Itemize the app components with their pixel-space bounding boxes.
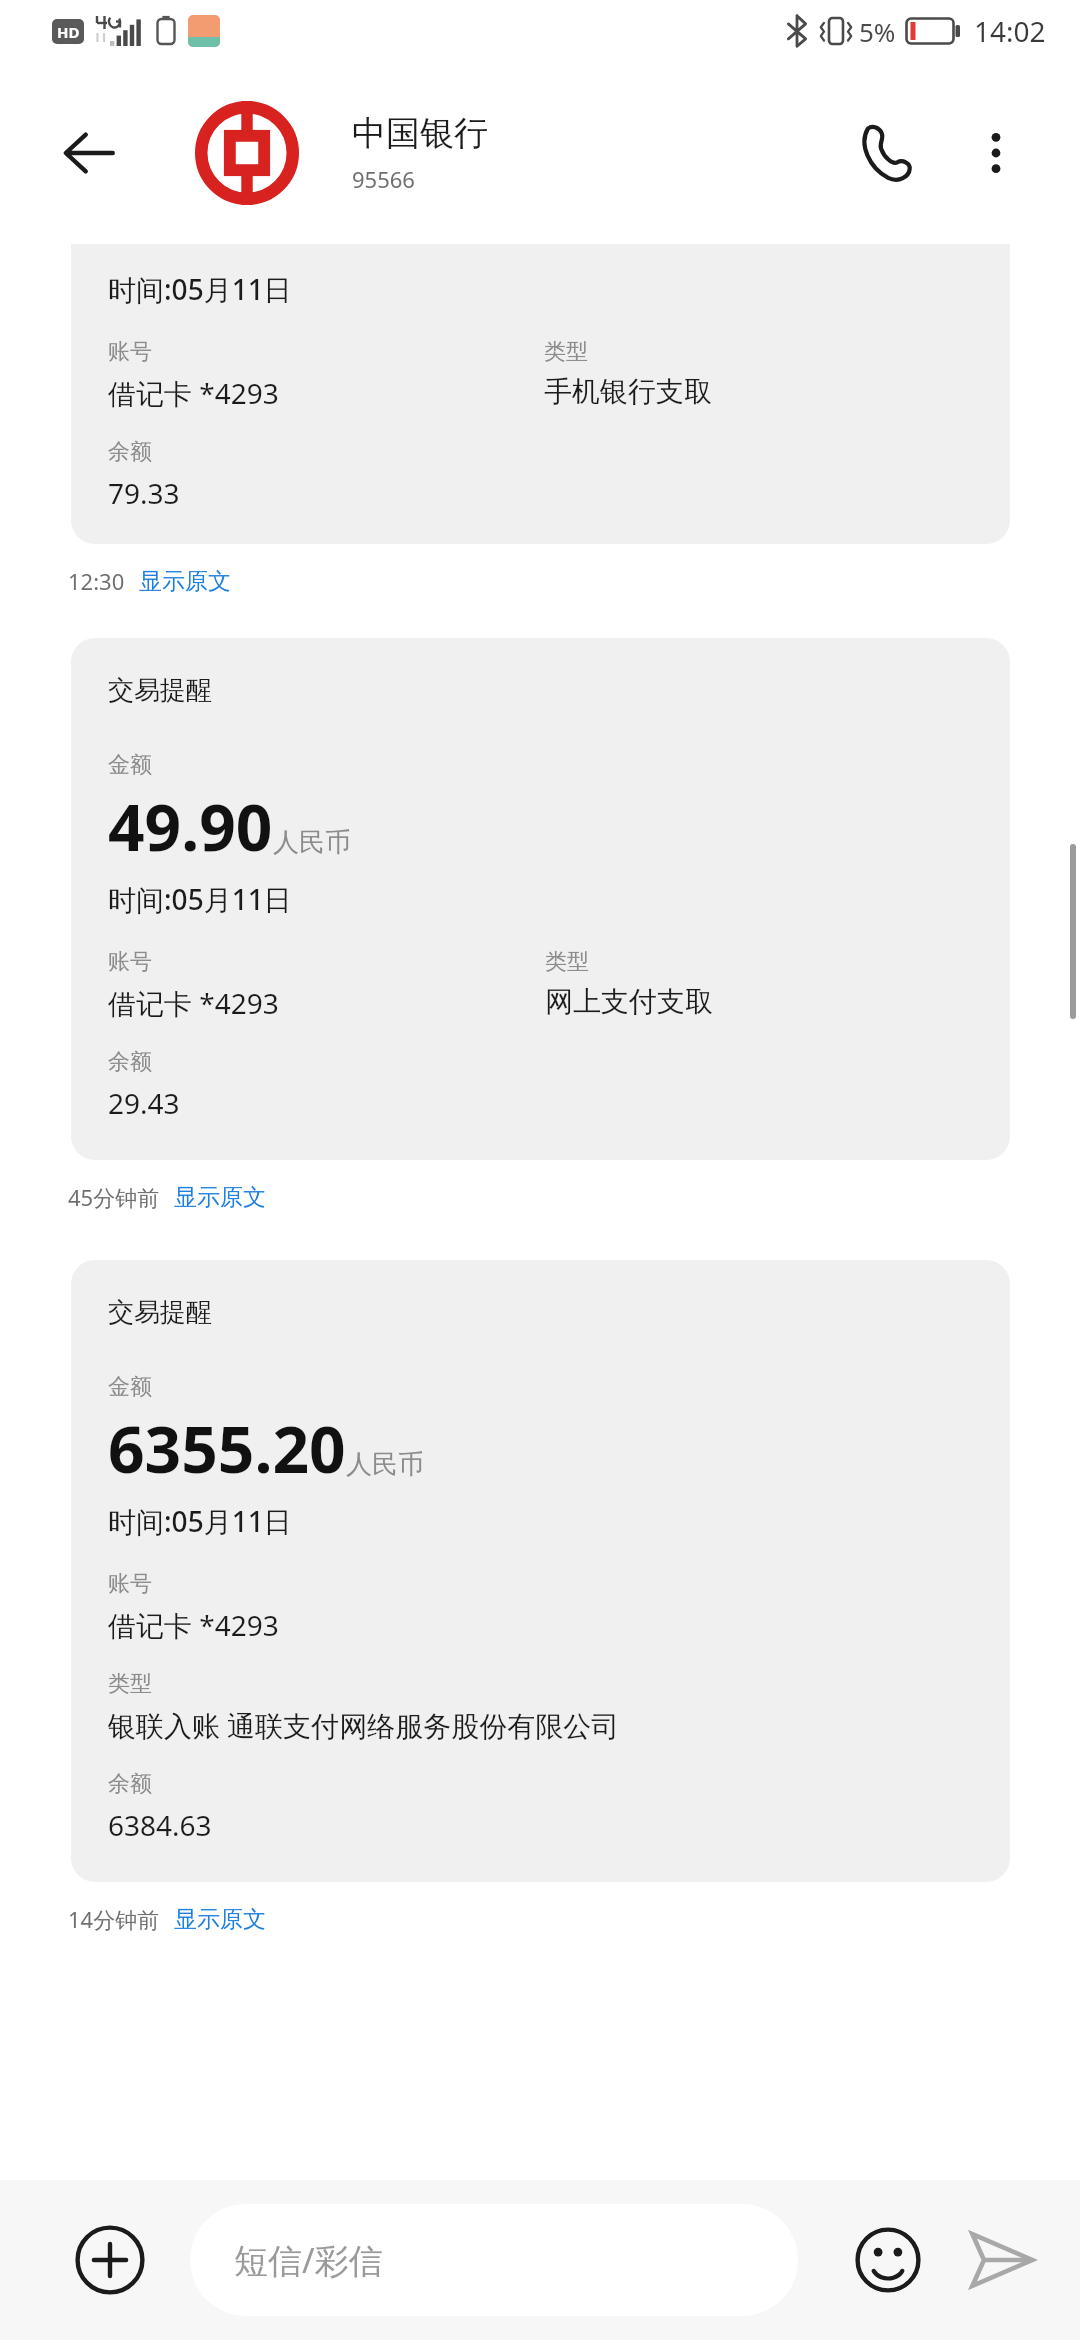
staticText: 交易提醒 [108, 1296, 212, 1329]
staticText: 时间:05月11日 [108, 1502, 292, 1540]
button[interactable]: Back [44, 108, 134, 198]
staticText: 短信/彩信 [234, 2237, 383, 2283]
staticText: 类型 [108, 1670, 152, 1698]
button[interactable]: 交易提醒 [71, 1260, 1010, 1882]
staticText: 显示原文 [174, 1183, 266, 1212]
button[interactable]: Send [954, 2213, 1048, 2307]
button[interactable]: Call [840, 106, 934, 200]
button[interactable]: 交易提醒 [71, 638, 1010, 1160]
staticText: 手机银行支取 [544, 374, 712, 409]
staticText: 金额 [108, 751, 152, 779]
staticText: 借记卡 *4293 [108, 1606, 279, 1644]
staticText: 借记卡 *4293 [108, 984, 279, 1022]
staticText: HD [57, 22, 80, 42]
staticText: 余额 [108, 1770, 152, 1798]
staticText: 银联入账 通联支付网络服务股份有限公司 [108, 1706, 620, 1744]
button[interactable]: Emoji [844, 2216, 932, 2304]
staticText: 14:02 [974, 12, 1046, 50]
staticText: 5% [859, 14, 896, 49]
staticText: 时间:05月11日 [108, 880, 292, 918]
staticText: 12:30 [68, 566, 125, 596]
button[interactable]: 显示原文 [174, 1183, 266, 1212]
staticText: 类型 [545, 948, 589, 976]
staticText: 类型 [544, 338, 588, 366]
button[interactable]: 显示原文 [139, 567, 231, 596]
staticText: 95566 [352, 164, 415, 194]
button[interactable]: 时间:05月11日 [71, 244, 1010, 544]
staticText: 账号 [108, 1570, 152, 1598]
button[interactable]: More options [952, 109, 1040, 197]
staticText: 交易提醒 [108, 674, 212, 707]
staticText: 6384.63 [108, 1806, 212, 1844]
staticText: 显示原文 [174, 1905, 266, 1934]
button[interactable]: 显示原文 [174, 1905, 266, 1934]
staticText: 余额 [108, 438, 152, 466]
staticText: 账号 [108, 948, 152, 976]
staticText: 显示原文 [139, 567, 231, 596]
button[interactable]: 短信/彩信 [190, 2204, 798, 2316]
staticText: 中国银行 [352, 112, 488, 155]
button[interactable]: Add attachment [62, 2212, 158, 2308]
staticText: 29.43 [108, 1084, 180, 1122]
staticText: 49.90 [108, 783, 273, 870]
staticText: 79.33 [108, 474, 180, 512]
staticText: 时间:05月11日 [108, 270, 292, 308]
staticText: 45分钟前 [68, 1182, 160, 1212]
staticText: 借记卡 *4293 [108, 374, 279, 412]
staticText: 金额 [108, 1373, 152, 1401]
staticText: 账号 [108, 338, 152, 366]
staticText: 人民币 [273, 826, 351, 859]
staticText: 6355.20 [108, 1405, 346, 1492]
staticText: 人民币 [346, 1448, 424, 1481]
staticText: 网上支付支取 [545, 984, 713, 1019]
staticText: 余额 [108, 1048, 152, 1076]
staticText: 14分钟前 [68, 1904, 160, 1934]
